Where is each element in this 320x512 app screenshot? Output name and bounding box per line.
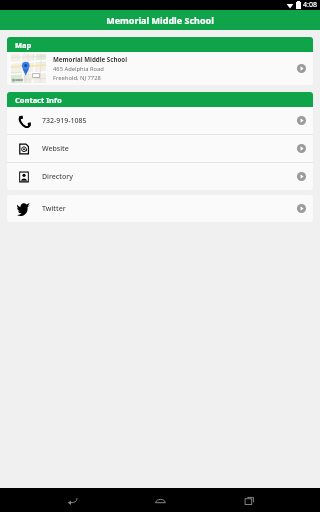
staticText: 4:08 [303, 0, 317, 10]
other: Open [297, 64, 306, 73]
staticText: Twitter [42, 204, 297, 214]
other: Open [297, 204, 306, 213]
staticText: Memorial Middle School [53, 55, 128, 63]
button[interactable]: Recent apps [232, 488, 266, 512]
staticText: Map [15, 40, 32, 50]
staticText: 732-919-1085 [42, 116, 297, 126]
button[interactable]: Home [143, 488, 177, 512]
button[interactable]: 732-919-1085 [7, 107, 313, 134]
staticText: Memorial Middle School [106, 14, 214, 26]
other: Open [297, 116, 306, 125]
button[interactable]: Website [7, 135, 313, 162]
other: Open [297, 144, 306, 153]
staticText: Website [42, 144, 297, 154]
button[interactable]: Directory [7, 163, 313, 190]
staticText: Contact Info [15, 95, 62, 105]
button[interactable]: Memorial Middle School [7, 52, 313, 85]
staticText: Freehold, NJ 7728 [53, 74, 101, 82]
staticText: Directory [42, 172, 297, 182]
staticText: 465 Adelphia Road [53, 65, 104, 73]
button[interactable]: Twitter [7, 195, 313, 222]
other: Open [297, 172, 306, 181]
button[interactable]: Back [55, 488, 89, 512]
